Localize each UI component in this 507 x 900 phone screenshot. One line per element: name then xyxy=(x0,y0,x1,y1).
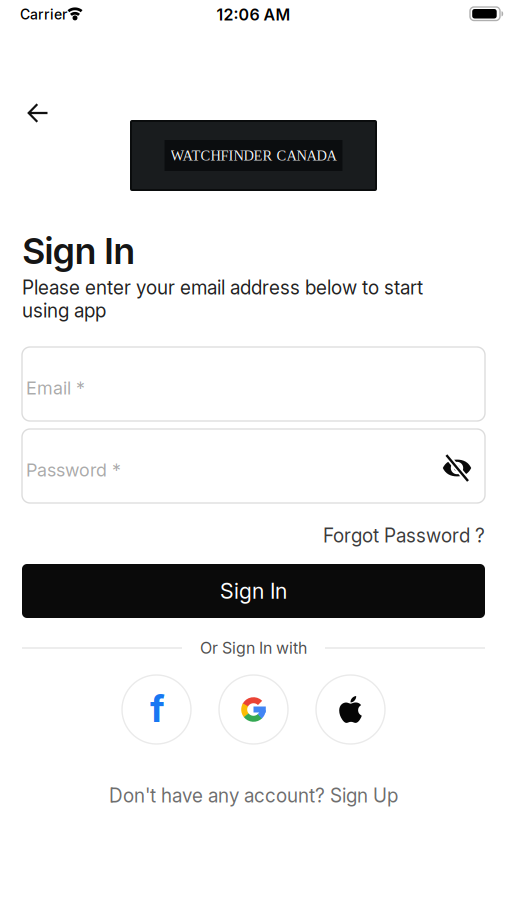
button[interactable]: Sign in with Google xyxy=(219,675,288,744)
button[interactable]: Sign in with Facebook xyxy=(122,675,191,744)
staticText: f xyxy=(150,686,165,731)
button[interactable]: Password xyxy=(22,429,485,503)
staticText: Forgot Password ? xyxy=(323,524,485,547)
button[interactable]: Sign Up xyxy=(330,784,398,807)
staticText: Please enter your email address below to… xyxy=(22,276,423,322)
staticText: Sign In xyxy=(220,578,287,604)
staticText: 12:06 AM xyxy=(216,5,290,24)
button[interactable]: Email xyxy=(22,347,485,421)
button[interactable]: Forgot Password ? xyxy=(323,524,485,547)
button[interactable]: Back xyxy=(16,93,60,133)
staticText: Don't have any account? xyxy=(109,784,330,807)
staticText: Sign In xyxy=(22,229,135,273)
staticText: Or Sign In with xyxy=(200,638,307,658)
button[interactable]: Show password xyxy=(435,446,479,490)
button[interactable]: Sign in with Apple xyxy=(316,675,385,744)
staticText: WATCHFINDER CANADA xyxy=(170,147,336,164)
staticText: Sign Up xyxy=(330,784,398,807)
staticText: Password * xyxy=(26,459,121,481)
button[interactable]: Sign In xyxy=(22,564,485,618)
staticText: Email * xyxy=(26,377,85,399)
staticText: Carrier xyxy=(20,6,67,23)
